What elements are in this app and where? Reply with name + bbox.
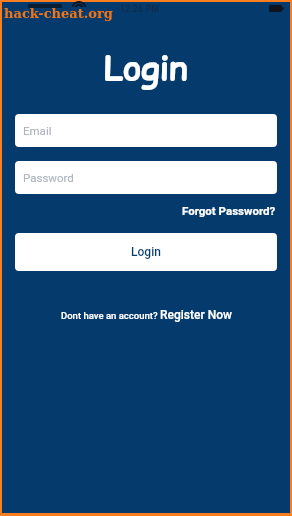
staticText: hack-cheat.org [4,6,113,21]
button[interactable]: Email [15,114,277,147]
staticText: 12:26 PM [120,4,160,14]
staticText: Dont have an account? [61,310,158,321]
staticText: Login [104,44,188,92]
staticText: Email [23,124,52,137]
staticText: Password [23,171,74,184]
staticText: Register Now [160,308,232,322]
button[interactable]: Password [15,161,277,194]
button[interactable]: Login [15,233,277,271]
button[interactable]: Register Now [160,308,232,322]
staticText: Forgot Password? [182,204,276,217]
button[interactable]: Forgot Password? [182,204,276,217]
staticText: Login [131,245,161,259]
